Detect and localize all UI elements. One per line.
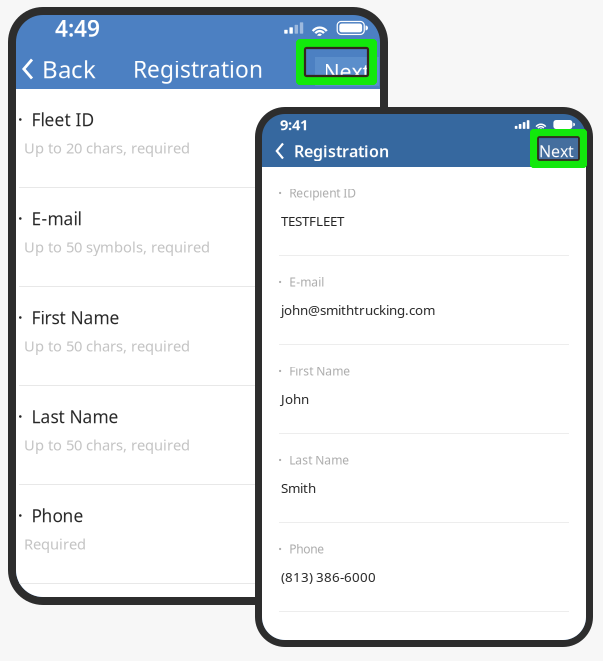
staticText: Next	[323, 57, 370, 86]
button[interactable]: Next	[315, 57, 379, 86]
staticText: Up to 50 chars, required	[24, 435, 190, 454]
staticText: Fleet ID	[32, 108, 95, 131]
staticText: Required	[24, 534, 86, 553]
button[interactable]: Back	[16, 49, 106, 89]
staticText: E-mail	[289, 274, 324, 290]
staticText: 4:49	[55, 13, 100, 43]
staticText: Phone	[289, 541, 324, 557]
staticText: E-mail	[32, 207, 82, 230]
staticText: Smith	[281, 479, 316, 497]
staticText: Up to 50 chars, required	[24, 336, 190, 355]
staticText: Recipient ID	[289, 185, 356, 201]
staticText: Registration	[294, 140, 389, 162]
staticText: Last Name	[32, 405, 119, 428]
staticText: Registration	[133, 54, 263, 84]
staticText: John	[281, 390, 309, 408]
staticText: Up to 20 chars, required	[24, 138, 190, 157]
button[interactable]: Next	[526, 131, 587, 171]
staticText: (813) 386-6000	[281, 568, 376, 586]
button[interactable]: Back	[262, 135, 294, 167]
staticText: Last Name	[289, 452, 349, 468]
staticText: First Name	[32, 306, 120, 329]
staticText: Back	[42, 53, 96, 85]
staticText: Next	[539, 140, 574, 162]
staticText: Phone	[32, 504, 84, 527]
staticText: Up to 50 symbols, required	[24, 237, 210, 256]
staticText: TESTFLEET	[281, 212, 344, 230]
staticText: First Name	[289, 363, 350, 379]
staticText: 9:41	[280, 115, 308, 134]
staticText: john@smithtrucking.com	[281, 301, 435, 319]
